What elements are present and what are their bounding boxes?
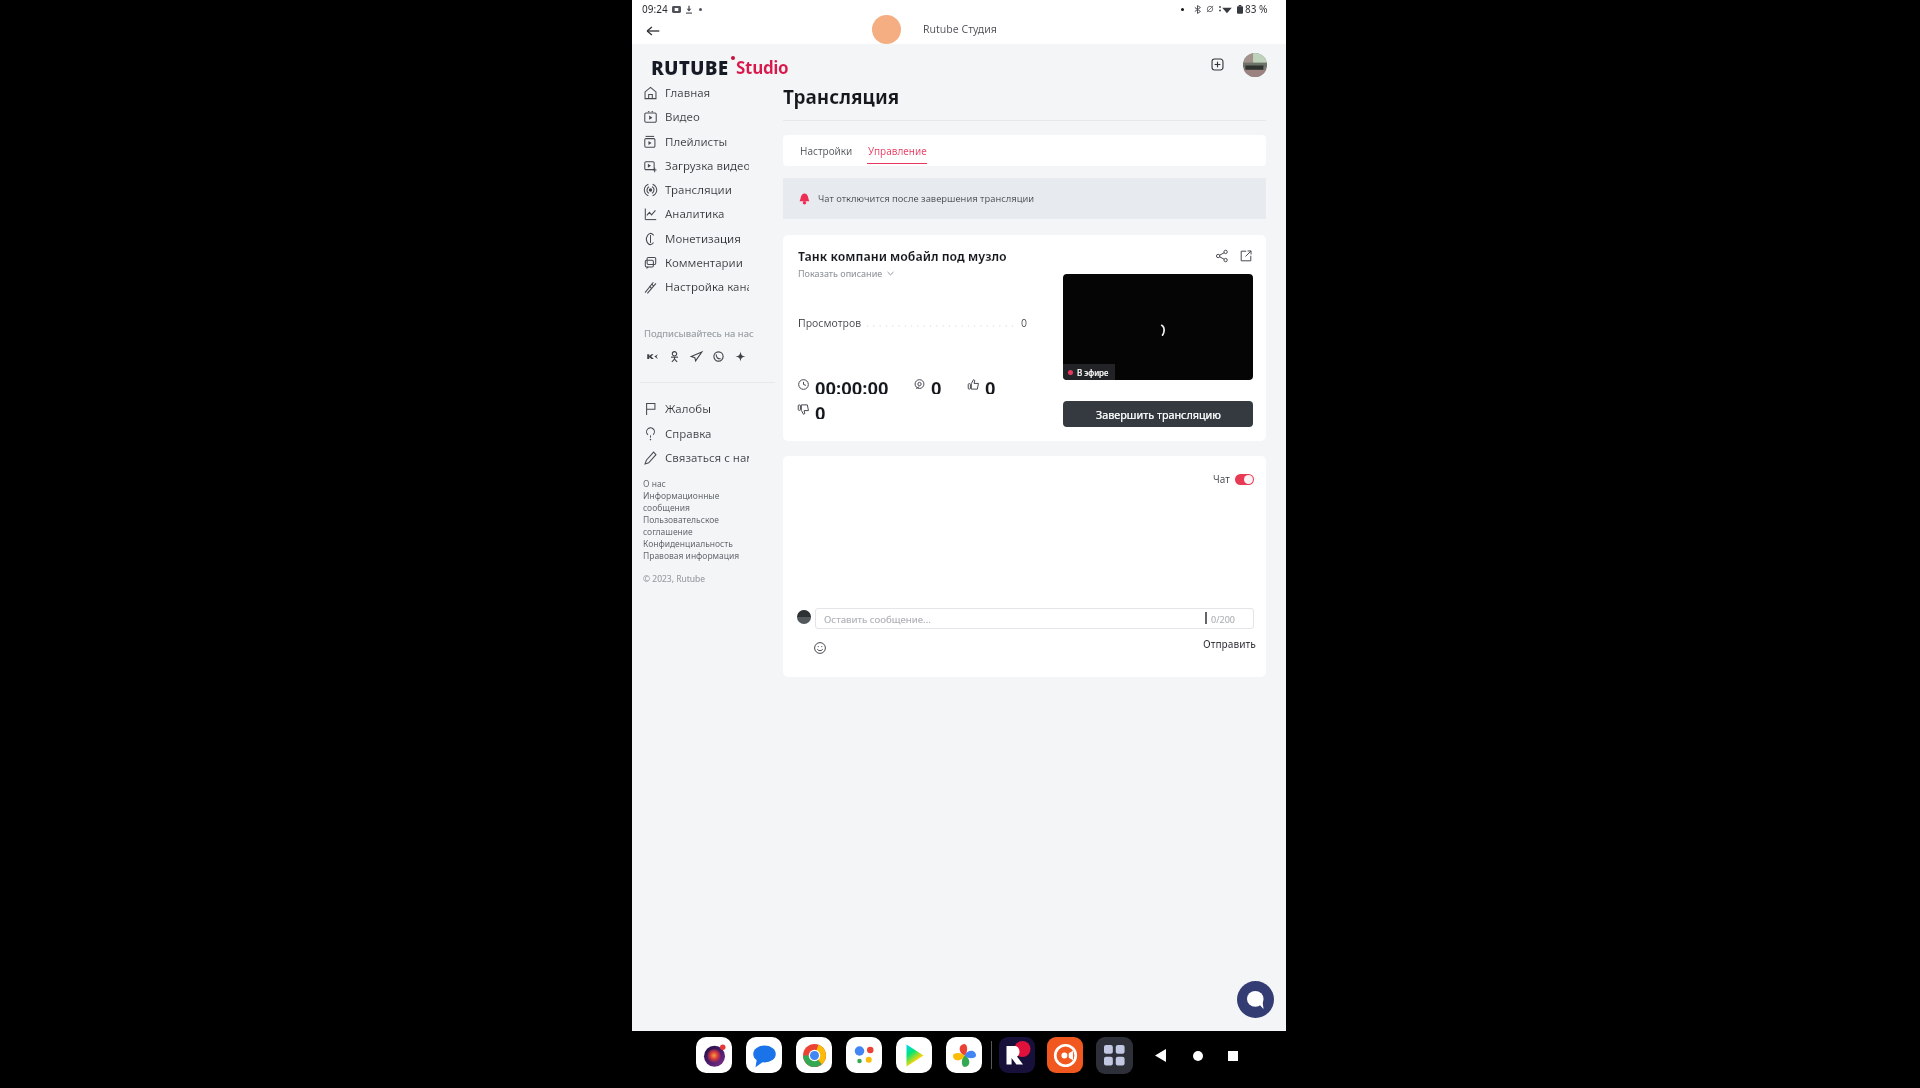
button[interactable]: Home — [1185, 1043, 1210, 1068]
button[interactable]: Recent apps — [1220, 1043, 1245, 1068]
staticText: Связаться с нам — [665, 450, 749, 466]
staticText: О нас — [643, 478, 666, 490]
staticText: Танк компани мобайл под музло — [798, 248, 1007, 265]
staticText: Показать описание — [798, 267, 883, 279]
button[interactable]: Чат — [1213, 471, 1254, 487]
staticText: Видео — [665, 109, 700, 125]
staticText: Аналитика — [665, 206, 725, 222]
button[interactable]: Завершить трансляцию — [1063, 401, 1253, 427]
staticText: Комментарии — [665, 255, 743, 271]
button[interactable]: Связаться с нам — [636, 447, 749, 469]
button[interactable]: О нас — [643, 478, 666, 490]
staticText: Studio — [736, 56, 789, 79]
button[interactable]: Profile — [1243, 53, 1267, 77]
button[interactable]: Camera — [696, 1037, 732, 1073]
button[interactable]: Open support chat — [1237, 981, 1274, 1018]
button[interactable]: Chrome — [796, 1037, 832, 1073]
staticText: 00:00:00 — [815, 375, 889, 394]
button[interactable]: Viber — [707, 346, 729, 366]
staticText: Жалобы — [665, 401, 711, 417]
button[interactable]: Настройки — [795, 135, 857, 166]
button[interactable]: Жалобы — [636, 398, 749, 420]
staticText: Просмотров — [798, 316, 862, 330]
button[interactable]: Настройка кана — [636, 276, 749, 298]
button[interactable]: Back — [1148, 1043, 1173, 1068]
button[interactable]: Play Store — [896, 1037, 932, 1073]
button[interactable]: Конфиденциальность — [643, 538, 733, 550]
staticText: Чат отключится после завершения трансляц… — [818, 192, 1035, 205]
button[interactable]: Messages — [746, 1037, 782, 1073]
button[interactable]: Share — [1212, 246, 1232, 266]
button[interactable]: Assistant — [846, 1037, 882, 1073]
button[interactable]: Показать описание — [796, 266, 896, 280]
button[interactable]: Пользовательское — [643, 514, 719, 526]
staticText: Пользовательское — [643, 514, 719, 526]
button[interactable]: Монетизация — [636, 228, 749, 250]
staticText: 09:24 — [642, 2, 668, 16]
staticText: Rutube Студия — [923, 22, 997, 36]
staticText: Справка — [665, 426, 712, 442]
button[interactable]: VK — [641, 346, 663, 366]
button[interactable]: Плейлисты — [636, 131, 749, 153]
staticText: Информационные — [643, 490, 720, 502]
staticText: 0 — [985, 375, 996, 394]
staticText: © 2023, Rutube — [643, 573, 706, 585]
staticText: Конфиденциальность — [643, 538, 733, 550]
staticText: Настройка кана — [665, 279, 749, 295]
button[interactable]: Photos — [946, 1037, 982, 1073]
staticText: Оставить сообщение... — [824, 613, 931, 626]
staticText: Монетизация — [665, 231, 741, 247]
button[interactable]: Back — [640, 18, 666, 44]
staticText: В эфире — [1077, 367, 1109, 378]
button[interactable]: Odnoklassniki — [663, 346, 685, 366]
button[interactable]: All apps — [1096, 1037, 1133, 1074]
button[interactable]: Отправить — [1201, 637, 1258, 653]
staticText: 0 — [815, 400, 826, 419]
button[interactable]: Комментарии — [636, 252, 749, 274]
button[interactable]: Правовая информация — [643, 550, 740, 562]
button[interactable]: Аналитика — [636, 203, 749, 225]
staticText: Трансляции — [665, 182, 732, 198]
button[interactable]: Telegram — [685, 346, 707, 366]
staticText: Отправить — [1203, 637, 1256, 651]
button[interactable]: Трансляции — [636, 179, 749, 201]
button[interactable]: соглашение — [643, 526, 693, 538]
staticText: RUTUBE — [651, 55, 729, 81]
staticText: 83 % — [1245, 2, 1268, 16]
staticText: 0 — [1021, 316, 1028, 330]
button[interactable]: Rutube — [999, 1037, 1035, 1073]
button[interactable]: Emoji — [810, 638, 830, 658]
button[interactable]: Add — [1204, 51, 1231, 78]
button[interactable]: Оставить сообщение... — [815, 608, 1254, 629]
button[interactable]: Информационные — [643, 490, 720, 502]
staticText: Завершить трансляцию — [1096, 407, 1221, 422]
button[interactable]: Управление — [862, 135, 932, 166]
staticText: соглашение — [643, 526, 693, 538]
staticText: Главная — [665, 85, 711, 101]
button[interactable]: Видео — [636, 106, 749, 128]
staticText: Подписывайтесь на нас — [644, 327, 754, 340]
button[interactable]: сообщения — [643, 502, 690, 514]
staticText: Правовая информация — [643, 550, 740, 562]
staticText: Загрузка видео — [665, 158, 749, 174]
staticText: сообщения — [643, 502, 690, 514]
staticText: Трансляция — [783, 84, 900, 110]
button[interactable]: More — [729, 346, 751, 366]
staticText: Чат — [1213, 472, 1230, 486]
staticText: 0 — [931, 375, 942, 394]
staticText: Настройки — [800, 144, 853, 158]
staticText: Плейлисты — [665, 134, 728, 150]
button[interactable]: Главная — [636, 82, 749, 104]
button[interactable]: Загрузка видео — [636, 155, 749, 177]
button[interactable]: Screen recorder — [1047, 1037, 1083, 1073]
staticText: Управление — [868, 144, 927, 158]
button[interactable]: Open in new window — [1236, 246, 1256, 266]
button[interactable]: Справка — [636, 423, 749, 445]
staticText: 0/200 — [1211, 613, 1235, 625]
